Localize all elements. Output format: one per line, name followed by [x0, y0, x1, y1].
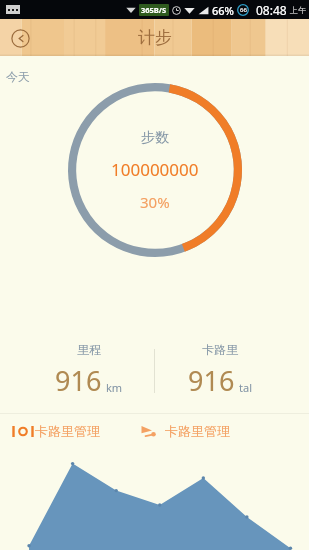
staticText: 卡路里管理 [35, 423, 100, 439]
button[interactable]: 里程 [24, 339, 154, 402]
staticText: 08:48 [256, 2, 287, 18]
staticText: 916 [188, 362, 235, 399]
staticText: 步数 [141, 129, 169, 147]
staticText: 916 [55, 362, 102, 399]
staticText: 66 [240, 6, 247, 14]
staticText: 30% [140, 192, 170, 212]
button[interactable]: Back [6, 24, 34, 52]
staticText: 里程 [77, 342, 101, 357]
staticText: 今天 [6, 69, 30, 84]
button[interactable]: 卡路里管理 [140, 423, 230, 439]
staticText: 66% [212, 3, 234, 18]
staticText: 卡路里管理 [165, 423, 230, 439]
button[interactable]: 卡路里 [155, 339, 285, 402]
staticText: tal [239, 380, 252, 395]
staticText: 365B/S [141, 5, 167, 15]
staticText: 100000000 [111, 158, 199, 181]
staticText: 卡路里 [202, 342, 238, 357]
staticText: 计步 [138, 27, 172, 48]
staticText: km [106, 380, 123, 395]
button[interactable]: 卡路里管理 [11, 423, 100, 439]
staticText: 上午 [290, 5, 306, 15]
